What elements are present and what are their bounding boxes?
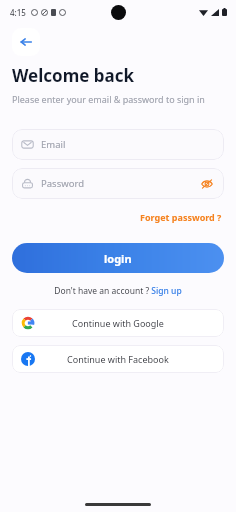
staticText: Continue with Google [72,317,164,329]
staticText: Password [41,177,84,190]
staticText: Don't have an account ? Sign up [54,285,182,297]
button[interactable]: login [12,243,224,273]
button[interactable]: Password [12,168,224,199]
staticText: login [104,251,132,266]
staticText: Please enter your email & password to si… [12,93,205,105]
button[interactable]: Don't have an account ? Sign up [52,284,184,298]
staticText: Welcome back [12,64,135,87]
staticText: 4:15 [10,7,26,18]
button[interactable]: Email [12,129,224,160]
button[interactable]: Back [12,28,40,56]
button[interactable]: Toggle password visibility [199,176,215,192]
staticText: Email [41,138,66,151]
button[interactable]: Continue with Google [12,309,224,337]
button[interactable]: Continue with Facebook [12,345,224,373]
staticText: Continue with Facebook [67,353,169,365]
staticText: Forget password ? [140,211,222,223]
button[interactable]: Forget password ? [138,209,224,225]
